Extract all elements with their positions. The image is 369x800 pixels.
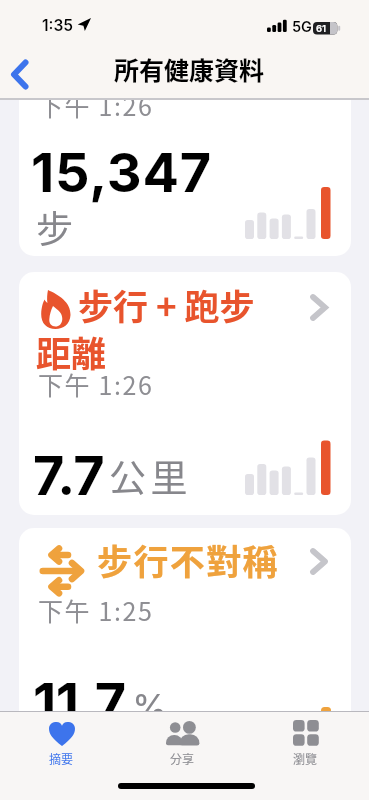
staticText: 下午 1:26 bbox=[38, 366, 154, 402]
staticText: 11.7 bbox=[33, 670, 126, 735]
staticText: 公里 bbox=[109, 449, 192, 503]
staticText: 5G bbox=[292, 18, 312, 36]
staticText: 7.7 bbox=[33, 443, 105, 508]
staticText: 步行不對稱 bbox=[97, 534, 280, 585]
staticText: 1:35 bbox=[42, 16, 74, 35]
staticText: 瀏覽 bbox=[293, 750, 318, 767]
button[interactable]: 分享 bbox=[148, 714, 217, 774]
staticText: 61 bbox=[316, 23, 327, 34]
staticText: 距離 bbox=[36, 326, 107, 377]
staticText: % bbox=[132, 685, 168, 729]
staticText: 步行 + 跑步 bbox=[78, 279, 255, 330]
staticText: 15,347 bbox=[31, 140, 212, 205]
button[interactable]: 瀏覽 bbox=[271, 714, 340, 774]
staticText: 所有健康資料 bbox=[114, 51, 265, 87]
staticText: 下午 1:25 bbox=[38, 592, 154, 628]
button[interactable] bbox=[19, 528, 351, 800]
button[interactable] bbox=[19, 40, 351, 256]
staticText: 下午 1:26 bbox=[38, 87, 154, 123]
button[interactable] bbox=[19, 272, 351, 515]
button[interactable] bbox=[9, 58, 30, 91]
staticText: 摘要 bbox=[49, 750, 74, 767]
button[interactable]: 摘要 bbox=[27, 714, 96, 774]
staticText: 步 bbox=[36, 200, 73, 254]
staticText: 分享 bbox=[170, 750, 195, 767]
